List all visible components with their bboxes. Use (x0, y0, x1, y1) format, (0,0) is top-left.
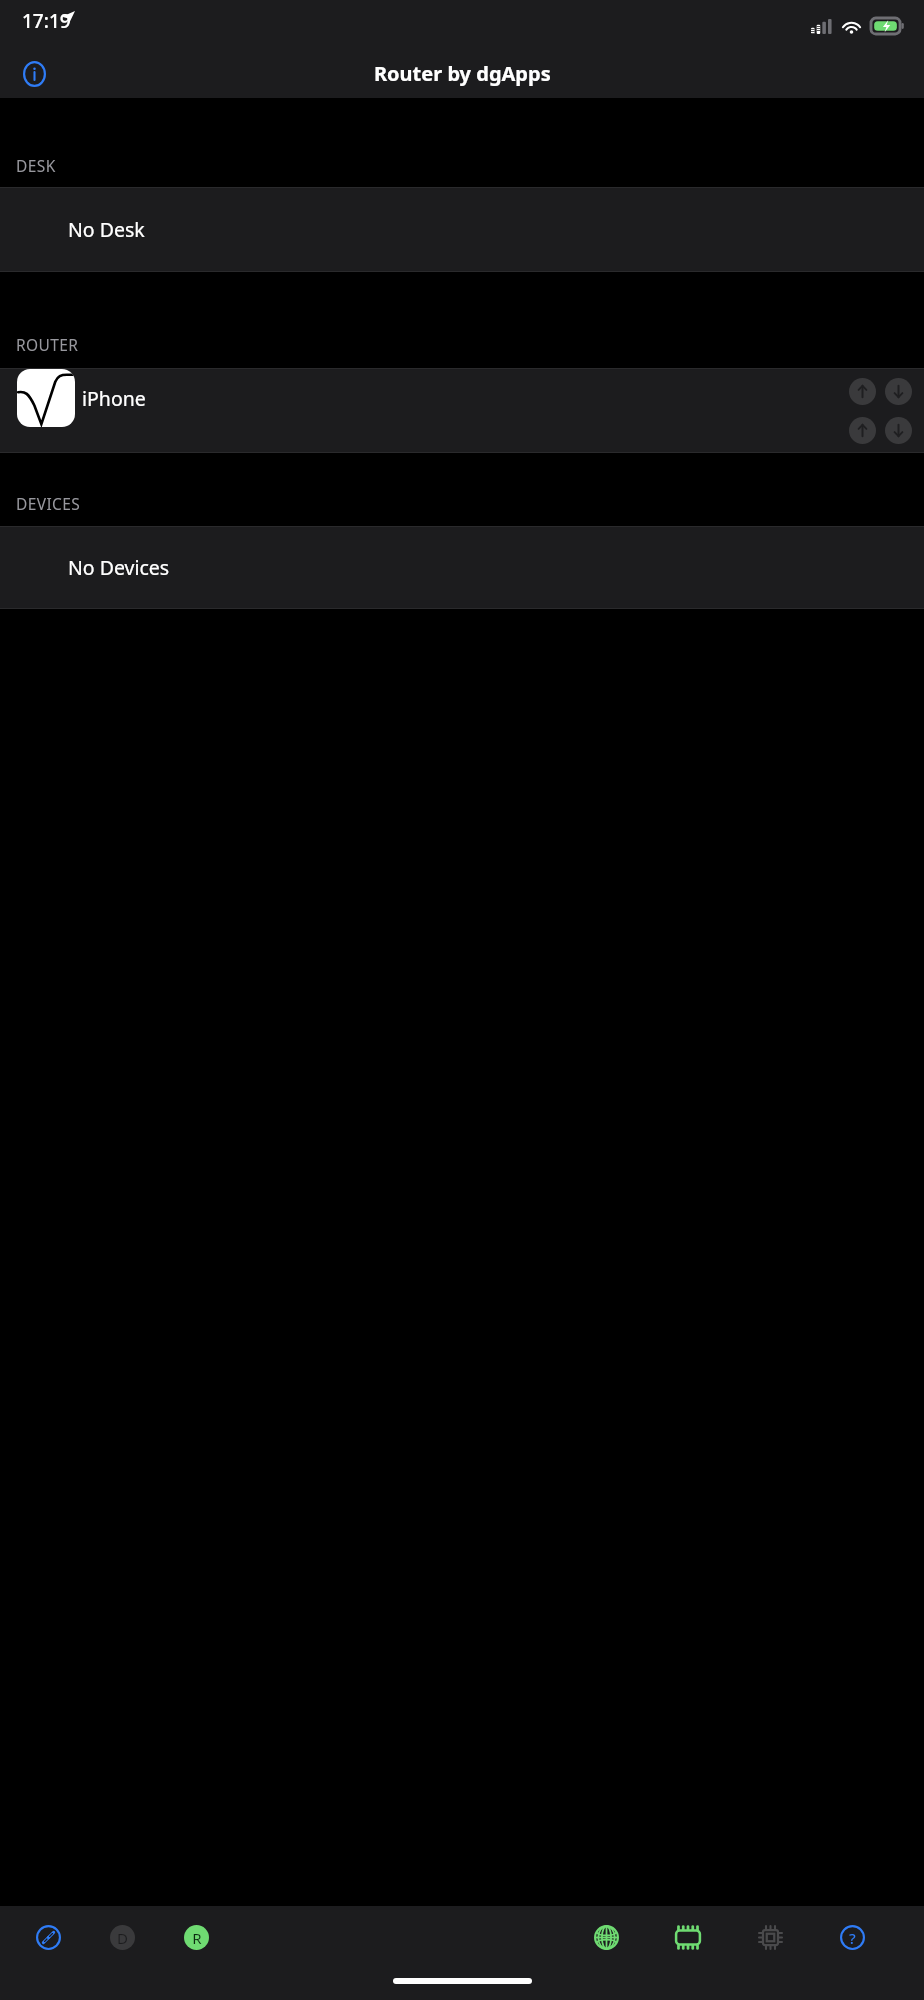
staticText: ? (849, 1928, 856, 1948)
button[interactable]: Router (174, 1915, 218, 1959)
button[interactable]: Move down (885, 378, 912, 405)
button[interactable]: Network (584, 1915, 628, 1959)
staticText: No Desk (68, 216, 145, 243)
button[interactable]: Desk (100, 1915, 144, 1959)
staticText: Router by dgApps (374, 60, 551, 87)
button[interactable]: iPhone (0, 369, 924, 452)
button[interactable]: Move down (885, 417, 912, 444)
staticText: R (192, 1928, 202, 1948)
staticText: ROUTER (16, 334, 79, 355)
button[interactable]: CPU (748, 1915, 792, 1959)
button[interactable]: Info (12, 52, 56, 96)
staticText: DESK (16, 155, 56, 176)
staticText: 17:19 (22, 8, 71, 34)
button[interactable]: Move up (849, 378, 876, 405)
button[interactable]: No Desk (0, 188, 924, 271)
button[interactable]: Link (26, 1915, 70, 1959)
staticText: DEVICES (16, 493, 81, 514)
button[interactable]: Memory (666, 1915, 710, 1959)
button[interactable]: Move up (849, 417, 876, 444)
staticText: No Devices (68, 554, 170, 581)
button[interactable]: No Devices (0, 527, 924, 608)
staticText: D (117, 1928, 128, 1948)
staticText: iPhone (82, 385, 146, 412)
button[interactable]: Help (830, 1915, 874, 1959)
